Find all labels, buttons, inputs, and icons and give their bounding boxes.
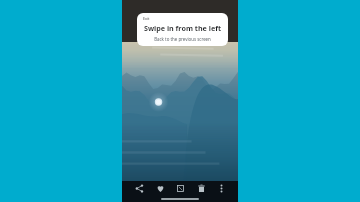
button[interactable]: Favorite [153,181,167,195]
button[interactable]: Share [132,181,146,195]
staticText: Back to the previous screen [143,36,222,42]
button[interactable]: Delete [194,181,208,195]
button[interactable]: Edit [173,181,187,195]
button[interactable]: Exit [137,13,228,46]
button[interactable]: More options [214,181,228,195]
staticText: Exit [143,16,222,21]
staticText: Swipe in from the left [143,23,222,33]
